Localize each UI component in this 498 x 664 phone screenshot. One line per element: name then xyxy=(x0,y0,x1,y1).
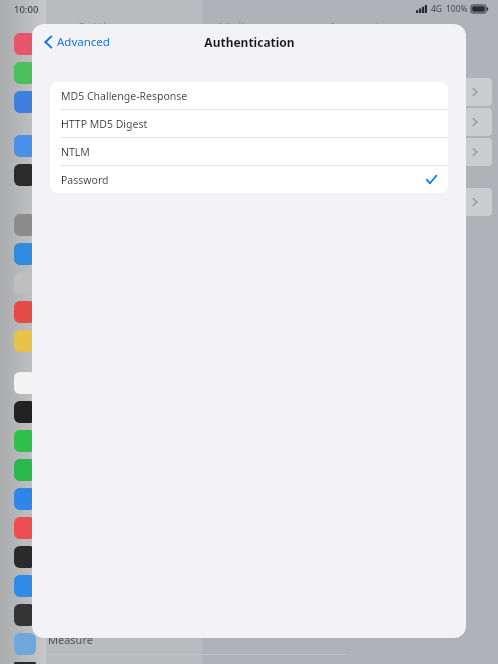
staticText: Settings xyxy=(78,18,130,36)
staticText: Measure xyxy=(48,632,93,647)
staticText: Mail xyxy=(218,18,246,36)
staticText: Advanced xyxy=(57,34,110,50)
button[interactable]: Password xyxy=(50,166,448,193)
staticText: Authentication xyxy=(204,34,295,50)
staticText: 100% xyxy=(446,3,468,15)
button[interactable]: NTLM xyxy=(50,138,448,166)
staticText: Password xyxy=(61,173,109,187)
button[interactable]: MD5 Challenge-Response xyxy=(50,82,448,110)
button[interactable]: Advanced xyxy=(40,30,114,54)
staticText: 10:00 xyxy=(14,3,39,16)
staticText: Accounts xyxy=(328,18,387,36)
staticText: 4G xyxy=(431,3,443,15)
staticText: MD5 Challenge-Response xyxy=(61,89,188,103)
staticText: HTTP MD5 Digest xyxy=(61,117,148,131)
staticText: NTLM xyxy=(61,145,90,159)
button[interactable]: HTTP MD5 Digest xyxy=(50,110,448,138)
